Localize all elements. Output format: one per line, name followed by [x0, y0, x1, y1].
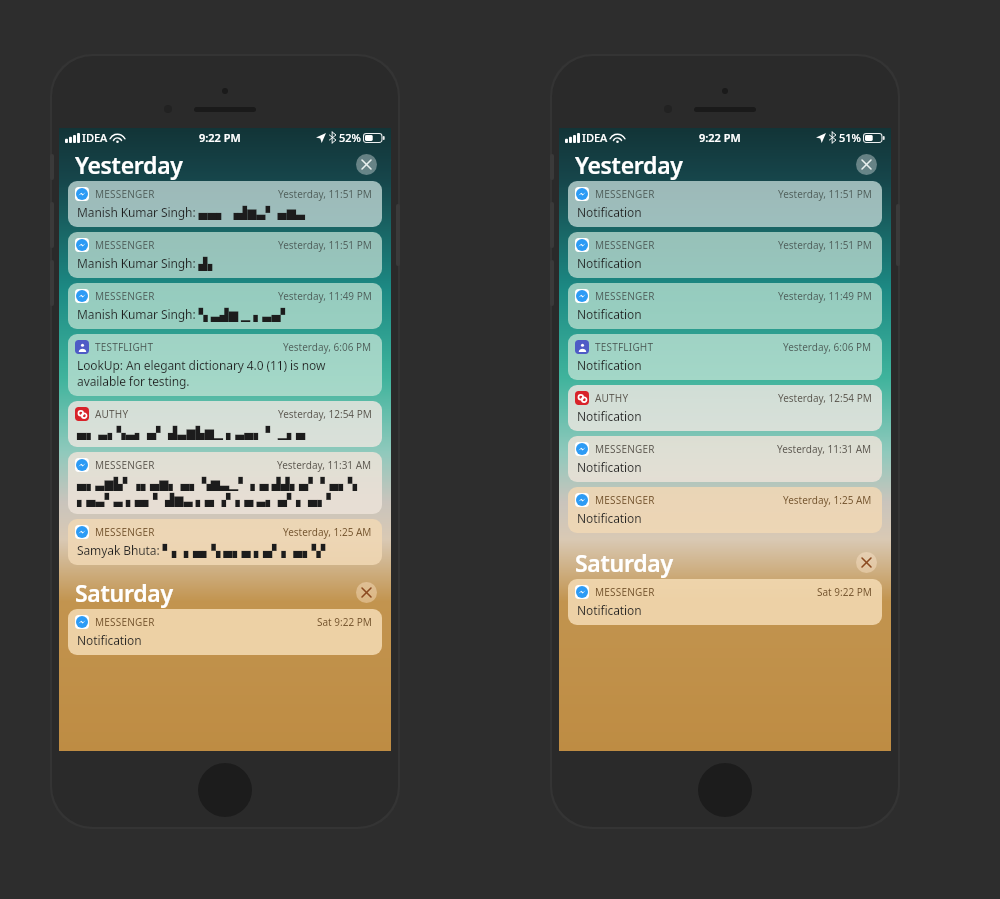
staticText: Yesterday, 11:51 PM	[778, 238, 872, 252]
button[interactable]: TESTFLIGHT	[568, 334, 882, 380]
staticText: MESSENGER	[595, 238, 655, 252]
staticText: LookUp: An elegant dictionary 4.0 (11) i…	[77, 357, 326, 373]
staticText: 51%	[839, 130, 861, 145]
button[interactable]: MESSENGER	[568, 579, 882, 625]
staticText: 52%	[339, 130, 361, 145]
staticText: Yesterday, 11:49 PM	[778, 289, 872, 303]
staticText: MESSENGER	[95, 238, 155, 252]
staticText: Yesterday	[575, 149, 683, 180]
staticText: Sat 9:22 PM	[817, 585, 872, 599]
staticText: 9:22 PM	[199, 130, 241, 145]
staticText: IDEA	[582, 130, 608, 145]
button[interactable]: MESSENGER	[68, 181, 382, 227]
staticText: IDEA	[82, 130, 108, 145]
staticText: ▄▖ ▃▖▚▃▖ ▄▘ ▟▃▆▙▆▁ ▖▃▄▖ ▘ ▁▖▄	[77, 424, 306, 440]
button[interactable]: TESTFLIGHT	[68, 334, 382, 396]
button[interactable]: Clear notifications	[356, 154, 377, 175]
button[interactable]: AUTHY	[68, 401, 382, 447]
button[interactable]: AUTHY	[568, 385, 882, 431]
staticText: Notification	[77, 632, 142, 648]
staticText: Notification	[577, 255, 642, 271]
staticText: Manish Kumar Singh: ▚ ▃▟▆ ▁ ▖▃▄▘	[77, 306, 290, 322]
staticText: MESSENGER	[595, 442, 655, 456]
staticText: Notification	[577, 408, 642, 424]
staticText: Yesterday	[75, 149, 183, 180]
staticText: Yesterday, 6:06 PM	[283, 340, 372, 354]
staticText: AUTHY	[595, 391, 629, 405]
staticText: Saturday	[575, 547, 673, 578]
staticText: ▖▄▃▘▃ ▖▄▖▘ ▟▆▃ ▖▄ ▗▘▖▄ ▃▖ ▄▘▖ ▄▖▘	[77, 491, 336, 507]
button[interactable]: MESSENGER	[568, 232, 882, 278]
staticText: Yesterday, 1:25 AM	[283, 525, 372, 539]
staticText: Yesterday, 12:54 PM	[778, 391, 872, 405]
staticText: Yesterday, 6:06 PM	[783, 340, 872, 354]
staticText: Yesterday, 11:51 PM	[278, 238, 372, 252]
button[interactable]: Home	[698, 763, 752, 817]
button[interactable]: MESSENGER	[568, 487, 882, 533]
staticText: ▄▖▃▆▙▘▗▖▄▆▖ ▄▖ ▚▆▃▁▘ ▖▄ ▟▟▖▄▘ ▘▄▖▚	[77, 475, 357, 491]
button[interactable]: MESSENGER	[568, 283, 882, 329]
staticText: MESSENGER	[95, 187, 155, 201]
staticText: Notification	[577, 602, 642, 618]
staticText: MESSENGER	[95, 458, 155, 472]
staticText: MESSENGER	[595, 493, 655, 507]
staticText: MESSENGER	[595, 585, 655, 599]
staticText: MESSENGER	[95, 615, 155, 629]
staticText: available for testing.	[77, 373, 190, 389]
staticText: AUTHY	[95, 407, 129, 421]
staticText: Yesterday, 11:31 AM	[277, 458, 372, 472]
staticText: Notification	[577, 459, 642, 475]
staticText: Notification	[577, 357, 642, 373]
staticText: Manish Kumar Singh: ▄▄▖ ▗▟▆▃▘ ▄▆▃	[77, 204, 305, 220]
staticText: Notification	[577, 306, 642, 322]
staticText: Saturday	[75, 577, 173, 608]
staticText: Notification	[577, 204, 642, 220]
button[interactable]: MESSENGER	[568, 181, 882, 227]
button[interactable]: MESSENGER	[68, 283, 382, 329]
staticText: Yesterday, 11:51 PM	[278, 187, 372, 201]
staticText: Yesterday, 1:25 AM	[783, 493, 872, 507]
staticText: Yesterday, 11:49 PM	[278, 289, 372, 303]
button[interactable]: MESSENGER	[68, 452, 382, 514]
staticText: Yesterday, 11:51 PM	[778, 187, 872, 201]
staticText: Samyak Bhuta: ▘▖ ▖▄▖▚ ▄▖▄ ▖▄▘▖ ▄▖▚▘	[77, 542, 330, 558]
staticText: Sat 9:22 PM	[317, 615, 372, 629]
button[interactable]: MESSENGER	[568, 436, 882, 482]
staticText: Yesterday, 11:31 AM	[777, 442, 872, 456]
button[interactable]: Home	[198, 763, 252, 817]
button[interactable]: MESSENGER	[68, 232, 382, 278]
staticText: MESSENGER	[595, 289, 655, 303]
staticText: Manish Kumar Singh: ▟▖	[77, 255, 217, 271]
staticText: Yesterday, 12:54 PM	[278, 407, 372, 421]
staticText: MESSENGER	[595, 187, 655, 201]
button[interactable]: MESSENGER	[68, 609, 382, 655]
staticText: TESTFLIGHT	[595, 340, 654, 354]
button[interactable]: Clear notifications	[856, 552, 877, 573]
button[interactable]: Clear notifications	[856, 154, 877, 175]
button[interactable]: MESSENGER	[68, 519, 382, 565]
staticText: MESSENGER	[95, 289, 155, 303]
staticText: TESTFLIGHT	[95, 340, 154, 354]
staticText: Notification	[577, 510, 642, 526]
button[interactable]: Clear notifications	[356, 582, 377, 603]
staticText: MESSENGER	[95, 525, 155, 539]
staticText: 9:22 PM	[699, 130, 741, 145]
